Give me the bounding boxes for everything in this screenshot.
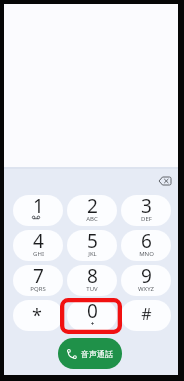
staticText: TUV [86,285,98,293]
staticText: 9 [141,265,152,289]
staticText: # [141,303,152,325]
staticText: GHI [33,250,44,258]
staticText: 0 [87,300,98,324]
button[interactable]: 音声通話 [58,338,122,369]
staticText: 5 [87,230,98,254]
staticText: ABC [86,215,98,223]
staticText: MNO [139,250,154,258]
button[interactable]: 9 [121,265,171,296]
staticText: 6 [141,230,152,254]
button[interactable]: 7 [13,265,63,296]
staticText: 3 [141,195,152,219]
button[interactable]: 0 [67,300,117,331]
button[interactable]: 1 [13,195,63,226]
staticText: 4 [33,230,44,254]
staticText: 8 [87,265,98,289]
button[interactable]: 2 [67,195,117,226]
button[interactable]: # [121,300,171,331]
staticText: 音声通話 [81,349,113,359]
staticText: * [32,303,42,328]
staticText: 7 [33,265,44,289]
staticText: 1 [33,195,44,219]
staticText: DEF [141,215,152,223]
button[interactable]: 3 [121,195,171,226]
button[interactable]: * [13,300,63,331]
button[interactable]: 4 [13,230,63,261]
staticText: PQRS [30,285,46,293]
button[interactable]: 6 [121,230,171,261]
button[interactable]: 5 [67,230,117,261]
staticText: 2 [87,195,98,219]
staticText: JKL [88,250,97,258]
button[interactable]: 8 [67,265,117,296]
button[interactable] [157,175,173,187]
staticText: WXYZ [138,285,154,293]
